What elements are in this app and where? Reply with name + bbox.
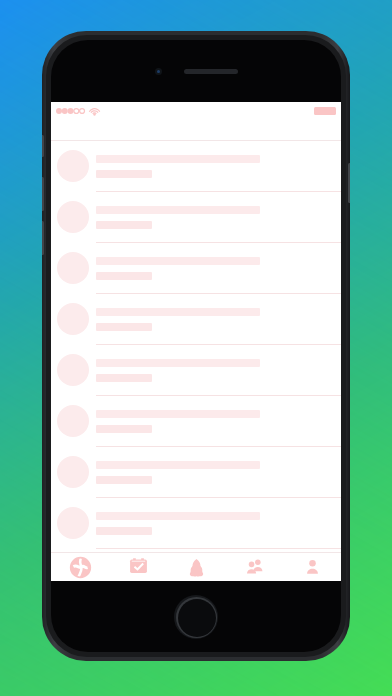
button[interactable]: Home xyxy=(174,595,218,639)
button[interactable]: Friends xyxy=(225,553,283,581)
button[interactable] xyxy=(51,447,341,498)
button[interactable]: Events xyxy=(109,553,167,581)
button[interactable] xyxy=(51,345,341,396)
button[interactable]: Profile xyxy=(283,553,341,581)
button[interactable] xyxy=(51,192,341,243)
button[interactable] xyxy=(51,141,341,192)
button[interactable] xyxy=(51,498,341,549)
button[interactable] xyxy=(51,396,341,447)
button[interactable] xyxy=(51,243,341,294)
button[interactable]: Trending xyxy=(167,553,225,581)
button[interactable] xyxy=(51,294,341,345)
button[interactable]: World xyxy=(51,553,109,581)
